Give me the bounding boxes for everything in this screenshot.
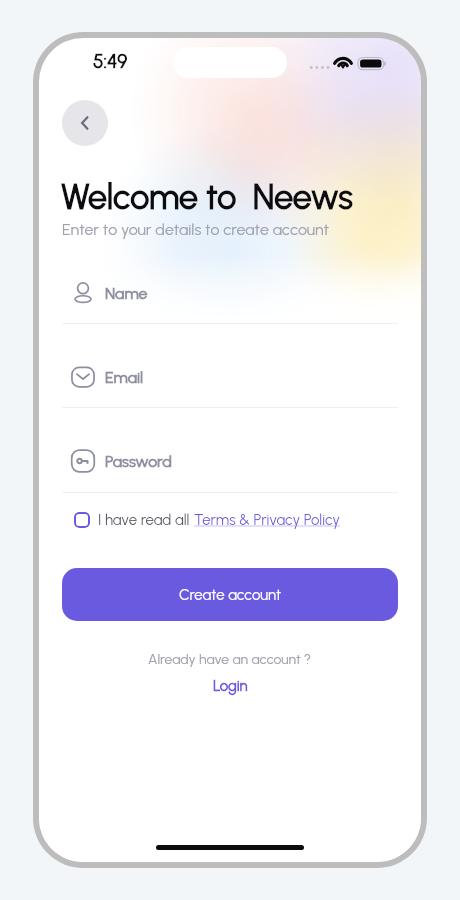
staticText: Enter to your details to create account xyxy=(62,220,330,239)
button[interactable]: Create account xyxy=(62,568,398,621)
button[interactable]: Name xyxy=(39,273,421,313)
staticText: Welcome to Neews xyxy=(61,177,353,218)
staticText: I have read all xyxy=(98,511,194,529)
staticText: Name xyxy=(105,284,148,303)
button[interactable]: Terms & Privacy Policy xyxy=(194,511,341,529)
button[interactable]: I have read all xyxy=(74,508,341,532)
staticText: Create account xyxy=(179,586,282,604)
button[interactable]: Login xyxy=(213,677,248,695)
staticText: Already have an account ? xyxy=(148,651,312,668)
button[interactable]: Password xyxy=(39,441,421,481)
staticText: Email xyxy=(105,368,144,387)
staticText: Login xyxy=(213,677,248,695)
button[interactable]: Back xyxy=(62,100,108,146)
staticText: Password xyxy=(105,452,172,471)
staticText: 5:49 xyxy=(93,50,128,73)
button[interactable]: Email xyxy=(39,357,421,397)
